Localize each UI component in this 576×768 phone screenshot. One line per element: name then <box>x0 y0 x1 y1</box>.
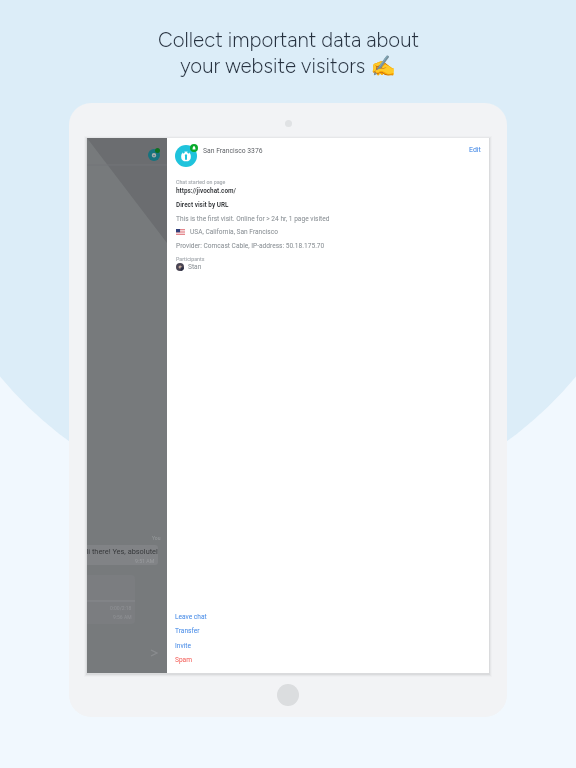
staticText: your website visitors ✍️ <box>180 54 396 78</box>
staticText: https://jivochat.com/ <box>176 187 236 195</box>
button[interactable]: Spam <box>175 654 233 665</box>
staticText: You <box>152 535 161 541</box>
staticText: San Francisco 3376 <box>203 147 263 155</box>
staticText: Provider: Comcast Cable, IP-address: 50.… <box>176 242 325 250</box>
staticText: Edit <box>469 146 481 154</box>
staticText: 0:00/2:18 <box>110 605 132 611</box>
staticText: Transfer <box>175 627 200 635</box>
staticText: Chat started on page <box>176 179 226 185</box>
staticText: USA, California, San Francisco <box>190 228 278 236</box>
staticText: Hi there! Yes, absolutely! <box>87 547 158 556</box>
staticText: Leave chat <box>175 613 207 621</box>
button[interactable]: Edit <box>465 143 484 157</box>
staticText: 9:56 AM <box>113 614 132 620</box>
staticText: Spam <box>175 656 192 664</box>
button[interactable]: Transfer <box>175 625 233 636</box>
staticText: Participants <box>176 256 205 262</box>
staticText: Direct visit by URL <box>176 201 229 209</box>
button[interactable]: Send <box>150 649 158 657</box>
staticText: Stan <box>188 263 202 271</box>
staticText: Collect important data about <box>158 28 419 52</box>
staticText: 9:51 AM <box>135 558 155 564</box>
staticText: Invite <box>175 642 191 650</box>
button[interactable]: Leave chat <box>175 611 233 622</box>
button[interactable]: Invite <box>175 640 233 651</box>
staticText: This is the first visit. Online for > 24… <box>176 215 330 223</box>
